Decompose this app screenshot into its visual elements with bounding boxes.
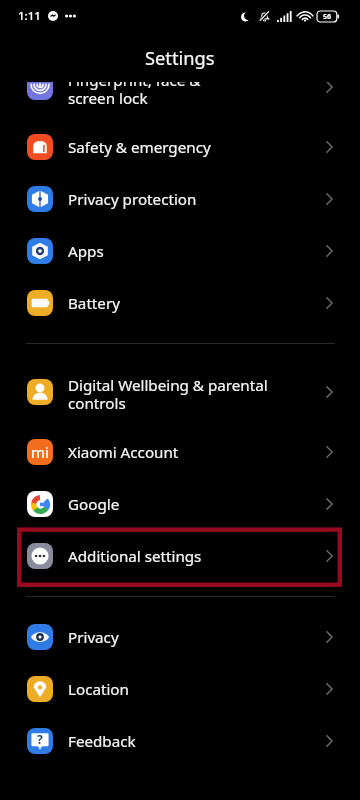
staticText: Feedback: [68, 731, 326, 752]
button[interactable]: Fingerprint, face & screen lock: [0, 82, 360, 121]
staticText: Fingerprint, face & screen lock: [68, 82, 326, 109]
staticText: 1:11: [18, 8, 41, 24]
staticText: 56: [323, 12, 332, 22]
button[interactable]: mi: [0, 426, 360, 478]
staticText: Privacy: [68, 627, 326, 648]
staticText: Privacy protection: [68, 189, 326, 210]
button[interactable]: Battery: [0, 277, 360, 329]
staticText: Additional settings: [68, 546, 326, 567]
button[interactable]: ?: [0, 715, 360, 767]
staticText: Settings: [145, 45, 215, 70]
staticText: Google: [68, 494, 326, 515]
staticText: Digital Wellbeing & parental controls: [68, 375, 326, 414]
button[interactable]: Digital Wellbeing & parental controls: [0, 358, 360, 426]
staticText: ?: [37, 731, 43, 747]
button[interactable]: Additional settings: [0, 530, 360, 582]
staticText: mi: [31, 442, 49, 462]
button[interactable]: Privacy: [0, 611, 360, 663]
staticText: Location: [68, 679, 326, 700]
button[interactable]: Google: [0, 478, 360, 530]
staticText: Battery: [68, 293, 326, 314]
button[interactable]: Safety & emergency: [0, 121, 360, 173]
button[interactable]: Location: [0, 663, 360, 715]
staticText: Safety & emergency: [68, 137, 326, 158]
staticText: Apps: [68, 241, 326, 262]
staticText: Xiaomi Account: [68, 442, 326, 463]
button[interactable]: Privacy protection: [0, 173, 360, 225]
button[interactable]: Apps: [0, 225, 360, 277]
